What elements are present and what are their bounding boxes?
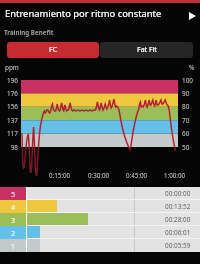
staticText: 60 [182,129,190,138]
staticText: 137 [7,116,18,125]
staticText: 00:06:01 [165,228,191,237]
staticText: 80 [182,102,190,111]
staticText: 50 [182,143,190,152]
staticText: 3 [11,215,16,225]
staticText: 70 [182,116,190,125]
staticText: 00:28:00 [165,215,191,224]
button[interactable]: FC [7,42,99,58]
staticText: 176 [7,89,18,98]
staticText: 00:00:00 [165,189,191,198]
staticText: 1:00:00 [164,171,186,179]
button[interactable]: Fat Fit [100,42,193,58]
staticText: Fat Fit [137,45,157,55]
staticText: 196 [7,76,18,85]
staticText: 5 [11,189,16,199]
staticText: FC [49,45,58,55]
staticText: 90 [182,89,190,98]
staticText: Training Benefit [4,28,54,36]
staticText: 98 [10,143,18,152]
staticText: 117 [7,129,18,138]
staticText: 0:30:00 [88,171,110,179]
staticText: 00:13:52 [165,202,191,211]
button[interactable]: Play [185,8,200,23]
staticText: Entrenamiento por ritmo constante [5,7,162,20]
staticText: 156 [7,102,18,111]
staticText: ppm [5,63,19,72]
staticText: 1 [11,241,16,251]
staticText: % [189,63,195,72]
staticText: 100 [182,76,193,85]
staticText: 2 [11,228,16,238]
staticText: 00:05:59 [165,241,191,250]
staticText: 4 [11,202,16,212]
staticText: 0:15:00 [49,171,71,179]
staticText: 0:45:00 [126,171,148,179]
